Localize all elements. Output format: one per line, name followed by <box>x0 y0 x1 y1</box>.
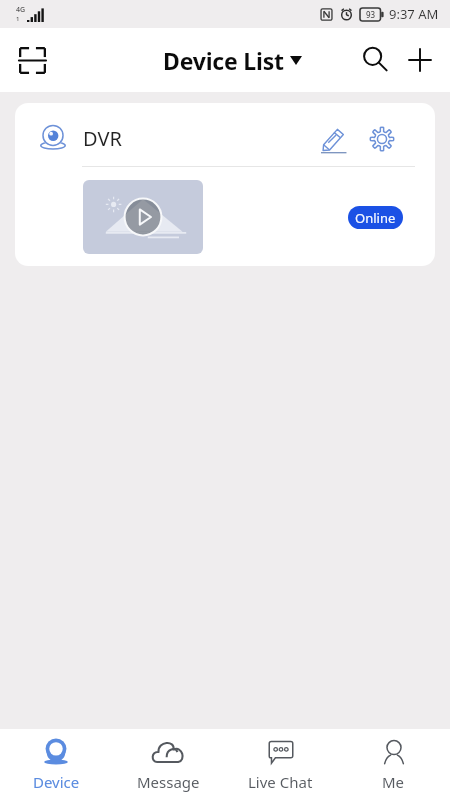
staticText: DVR <box>83 125 122 152</box>
button[interactable]: Scan QR code <box>8 36 56 84</box>
staticText: 9:37 AM <box>389 5 439 23</box>
staticText: Online <box>355 209 396 227</box>
staticText: Me <box>382 772 405 792</box>
button[interactable]: Edit <box>316 121 352 157</box>
button[interactable]: Settings <box>364 121 400 157</box>
button[interactable]: Search <box>354 38 398 82</box>
staticText: Device <box>33 772 80 792</box>
button[interactable]: Device <box>33 118 73 158</box>
staticText: 4G <box>16 5 26 15</box>
staticText: Live Chat <box>248 772 313 792</box>
button[interactable]: Play live video <box>83 180 203 254</box>
button[interactable]: Add device <box>398 38 442 82</box>
button[interactable]: Device <box>0 737 112 792</box>
button[interactable]: Message <box>112 737 224 792</box>
staticText: Device List <box>163 45 284 76</box>
staticText: 1 <box>16 15 20 23</box>
button[interactable]: Live Chat <box>224 737 337 792</box>
staticText: 93 <box>366 9 376 20</box>
button[interactable]: Online <box>348 206 403 229</box>
button[interactable]: Me <box>337 737 450 792</box>
staticText: Message <box>137 772 200 792</box>
